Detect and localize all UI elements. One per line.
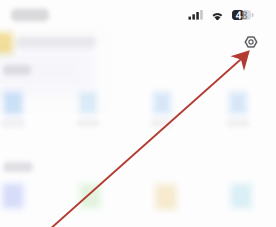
- button[interactable]: Settings: [240, 31, 262, 53]
- staticText: 4: [236, 8, 242, 22]
- staticText: 8: [242, 8, 248, 22]
